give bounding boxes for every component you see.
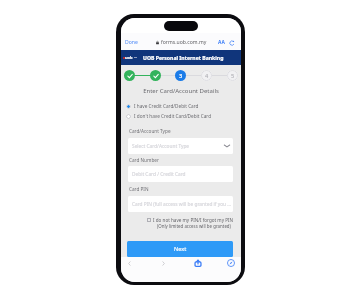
button[interactable] <box>150 70 161 81</box>
button[interactable]: Next <box>127 241 233 257</box>
staticText: uob <box>125 55 133 60</box>
staticText: Enter Card/Account Details <box>121 87 241 95</box>
button[interactable]: Tab overview <box>227 259 235 267</box>
button[interactable]: Share <box>194 259 202 267</box>
button[interactable]: I do not have my PIN/I forgot my PIN <box>121 217 234 229</box>
button[interactable]: Reload page <box>229 40 235 46</box>
staticText: Select Card/Account Type <box>132 143 190 150</box>
button[interactable]: Card PIN (full access will be granted if… <box>128 196 233 212</box>
staticText: I do not have my PIN/I forgot my PIN <box>153 217 234 223</box>
staticText: Card PIN <box>129 186 149 192</box>
staticText: 4 <box>205 72 209 80</box>
button[interactable]: AA <box>218 39 225 46</box>
button[interactable]: Done <box>125 39 138 46</box>
staticText: 5 <box>231 72 235 80</box>
button[interactable] <box>124 70 135 81</box>
staticText: forms.uob.com.my <box>161 39 207 46</box>
staticText: 3 <box>179 72 183 80</box>
staticText: UOB Personal Internet Banking <box>143 54 224 61</box>
button[interactable]: I don't have Credit Card/Debit Card <box>126 111 241 121</box>
button[interactable]: I have Credit Card/Debit Card <box>126 101 241 111</box>
staticText: Debit Card / Credit Card <box>132 171 186 178</box>
button[interactable]: Back <box>125 259 134 268</box>
staticText: Card PIN (full access will be granted if… <box>132 201 232 208</box>
button[interactable]: Forward <box>159 259 168 268</box>
staticText: I don't have Credit Card/Debit Card <box>134 113 212 119</box>
button[interactable]: 4 <box>201 70 212 81</box>
staticText: Next <box>174 245 187 253</box>
staticText: (Only limited access will be granted) <box>157 223 231 229</box>
button[interactable]: Debit Card / Credit Card <box>128 166 233 182</box>
button[interactable]: Select Card/Account Type <box>128 138 233 154</box>
button[interactable]: 5 <box>227 70 238 81</box>
staticText: Card Number <box>129 157 159 163</box>
button[interactable]: 3 <box>175 70 186 81</box>
staticText: I have Credit Card/Debit Card <box>134 103 199 109</box>
staticText: Card/Account Type <box>129 128 171 134</box>
